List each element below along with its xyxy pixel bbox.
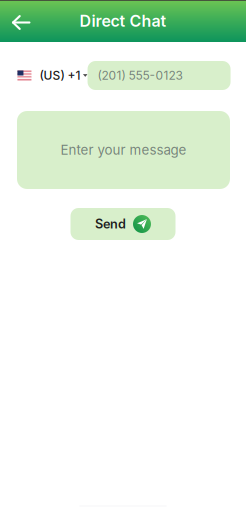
button[interactable]: (US) +1 <box>17 62 88 88</box>
staticText: (US) +1 <box>39 68 80 83</box>
staticText: Enter your message <box>60 142 186 158</box>
staticText: Direct Chat <box>79 11 166 31</box>
staticText: (201) 555-0123 <box>97 68 182 83</box>
button[interactable]: Send <box>70 208 175 240</box>
staticText: Send <box>95 216 126 232</box>
button[interactable]: Back <box>0 0 42 42</box>
